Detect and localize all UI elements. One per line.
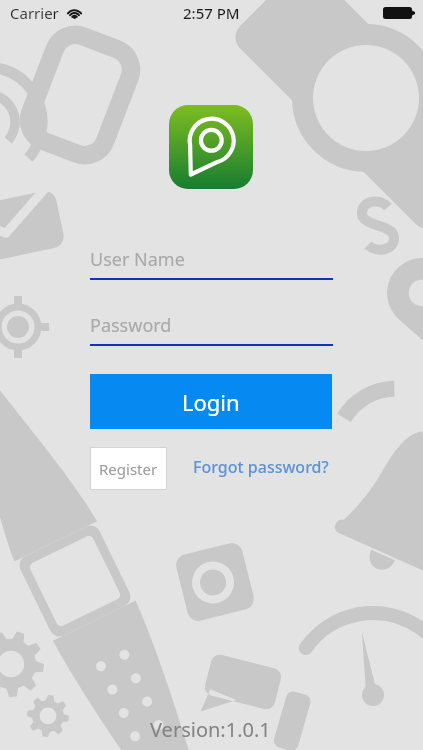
staticText: Version:1.0.1 — [150, 716, 271, 743]
staticText: Register — [99, 459, 158, 479]
staticText: Password — [90, 313, 172, 338]
staticText: Forgot password? — [193, 456, 329, 478]
button[interactable]: Login — [90, 374, 332, 429]
staticText: User Name — [90, 247, 185, 272]
staticText: 2:57 PM — [183, 3, 240, 23]
other: App logo — [169, 105, 253, 189]
staticText: Login — [182, 387, 240, 417]
button[interactable]: Register — [90, 447, 167, 490]
staticText: Carrier — [10, 3, 59, 23]
button[interactable]: Forgot password? — [191, 452, 331, 482]
